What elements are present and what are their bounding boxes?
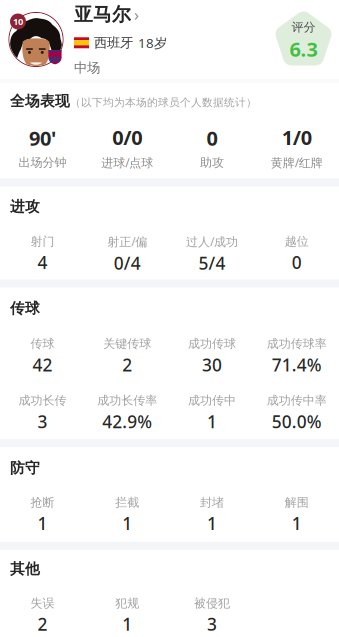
staticText: 失误 xyxy=(30,596,54,610)
button[interactable]: 球员头像 xyxy=(0,11,64,67)
staticText: 5/4 xyxy=(198,251,225,274)
staticText: 0/4 xyxy=(114,251,141,274)
staticText: 2 xyxy=(122,353,132,376)
staticText: 71.4% xyxy=(272,353,322,376)
staticText: 3 xyxy=(207,612,217,635)
staticText: （以下均为本场的球员个人数据统计） xyxy=(70,96,257,109)
staticText: 全场表现 xyxy=(10,92,70,110)
staticText: 成功传中率 xyxy=(267,393,327,408)
button[interactable]: 亚马尔 xyxy=(64,3,167,76)
staticText: 1 xyxy=(122,512,132,535)
staticText: 90' xyxy=(29,125,56,151)
staticText: 助攻 xyxy=(200,155,224,170)
staticText: 10 xyxy=(13,15,23,28)
staticText: 1 xyxy=(37,512,47,535)
staticText: 成功长传 xyxy=(18,393,66,408)
staticText: 18岁 xyxy=(138,34,167,52)
staticText: 4 xyxy=(37,251,47,274)
staticText: 进攻 xyxy=(10,197,40,215)
staticText: 0/0 xyxy=(112,124,142,151)
staticText: 越位 xyxy=(285,234,309,249)
staticText: 42.9% xyxy=(102,410,152,433)
staticText: 1 xyxy=(122,612,132,635)
staticText: 0 xyxy=(292,251,302,274)
staticText: 0 xyxy=(206,125,217,151)
staticText: 成功传球 xyxy=(188,336,236,351)
staticText: 30 xyxy=(202,353,222,376)
staticText: 2 xyxy=(37,612,47,635)
staticText: 传球 xyxy=(30,336,54,351)
staticText: 传球 xyxy=(10,299,40,317)
staticText: 西班牙 xyxy=(94,35,133,51)
staticText: › xyxy=(134,4,139,25)
staticText: 犯规 xyxy=(115,596,139,610)
staticText: 成功传球率 xyxy=(267,336,327,351)
staticText: 1 xyxy=(207,410,217,433)
staticText: 黄牌/红牌 xyxy=(271,155,323,170)
staticText: 关键传球 xyxy=(103,336,151,351)
staticText: 50.0% xyxy=(272,410,322,433)
staticText: 成功长传率 xyxy=(97,393,157,408)
staticText: 抢断 xyxy=(30,495,54,510)
staticText: 1 xyxy=(292,512,302,535)
staticText: 封堵 xyxy=(200,495,224,510)
staticText: 拦截 xyxy=(115,495,139,510)
staticText: 射门 xyxy=(30,234,54,249)
staticText: 1 xyxy=(207,512,217,535)
staticText: 6.3 xyxy=(289,36,317,62)
staticText: 3 xyxy=(37,410,47,433)
staticText: 评分 xyxy=(291,20,315,35)
staticText: 被侵犯 xyxy=(194,596,230,610)
staticText: 过人/成功 xyxy=(186,233,238,249)
staticText: 射正/偏 xyxy=(107,233,147,249)
staticText: 解围 xyxy=(285,495,309,510)
staticText: 防守 xyxy=(10,459,40,477)
staticText: 进球/点球 xyxy=(101,155,153,170)
staticText: 成功传中 xyxy=(188,393,236,408)
staticText: 亚马尔 xyxy=(74,3,131,26)
staticText: 中场 xyxy=(74,60,100,76)
staticText: 出场分钟 xyxy=(18,155,66,170)
staticText: 其他 xyxy=(10,560,40,578)
staticText: 42 xyxy=(32,353,52,376)
staticText: 1/0 xyxy=(282,124,312,151)
